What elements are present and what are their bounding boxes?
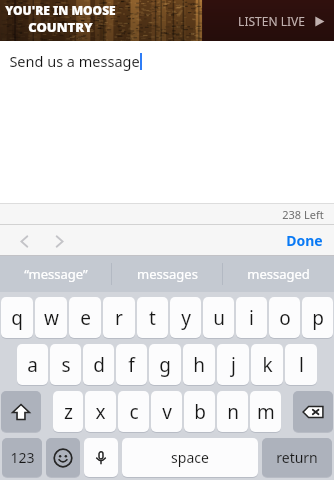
button[interactable]: “message”: [0, 256, 112, 292]
button[interactable]: Shift: [1, 391, 41, 432]
button[interactable]: u: [203, 297, 234, 338]
button[interactable]: j: [217, 344, 249, 385]
staticText: Done: [286, 231, 323, 250]
staticText: YOU'RE IN MOOSE: [5, 2, 116, 18]
staticText: f: [128, 352, 135, 378]
button[interactable]: b: [184, 391, 215, 432]
staticText: Send us a message: [9, 51, 140, 71]
button[interactable]: 123: [2, 438, 42, 477]
staticText: messaged: [247, 265, 310, 283]
button[interactable]: c: [118, 391, 149, 432]
button[interactable]: Next field: [46, 228, 72, 254]
staticText: LISTEN LIVE: [238, 13, 305, 29]
button[interactable]: o: [269, 297, 300, 338]
staticText: z: [64, 399, 73, 425]
button[interactable]: Dictation: [84, 438, 118, 477]
button[interactable]: Done: [286, 231, 323, 250]
staticText: j: [231, 352, 236, 378]
button[interactable]: g: [149, 344, 181, 385]
button[interactable]: Send us a message: [0, 41, 334, 203]
staticText: u: [213, 305, 225, 331]
button[interactable]: e: [69, 297, 101, 338]
staticText: v: [162, 399, 172, 425]
button[interactable]: n: [217, 391, 248, 432]
staticText: return: [276, 448, 318, 467]
button[interactable]: YOU'RE IN MOOSE: [5, 2, 116, 36]
staticText: “message”: [24, 265, 88, 283]
staticText: w: [44, 305, 59, 331]
button[interactable]: Emoji: [46, 438, 80, 477]
button[interactable]: i: [236, 297, 267, 338]
button[interactable]: messages: [112, 256, 223, 292]
button[interactable]: s: [50, 344, 81, 385]
button[interactable]: v: [151, 391, 182, 432]
staticText: e: [80, 305, 91, 331]
button[interactable]: Previous field: [11, 228, 37, 254]
staticText: n: [227, 399, 239, 425]
button[interactable]: m: [250, 391, 281, 432]
staticText: i: [249, 305, 254, 331]
button[interactable]: h: [183, 344, 215, 385]
button[interactable]: space: [122, 438, 258, 477]
staticText: l: [299, 352, 304, 378]
staticText: x: [95, 399, 106, 425]
staticText: k: [262, 352, 273, 378]
staticText: COUNTRY: [28, 18, 93, 36]
staticText: b: [194, 399, 206, 425]
button[interactable]: a: [17, 344, 48, 385]
staticText: m: [257, 399, 275, 425]
button[interactable]: w: [35, 297, 67, 338]
staticText: q: [11, 305, 23, 331]
button[interactable]: return: [262, 438, 332, 477]
button[interactable]: f: [116, 344, 147, 385]
button[interactable]: messaged: [223, 256, 334, 292]
button[interactable]: k: [251, 344, 283, 385]
staticText: h: [193, 352, 205, 378]
button[interactable]: Backspace: [293, 391, 333, 432]
staticText: p: [312, 305, 324, 331]
button[interactable]: q: [1, 297, 33, 338]
staticText: 123: [10, 448, 35, 467]
button[interactable]: p: [302, 297, 333, 338]
staticText: a: [27, 352, 38, 378]
button[interactable]: z: [53, 391, 83, 432]
staticText: g: [159, 352, 171, 378]
staticText: messages: [137, 265, 198, 283]
button[interactable]: x: [85, 391, 116, 432]
button[interactable]: r: [103, 297, 135, 338]
staticText: o: [279, 305, 291, 331]
staticText: r: [115, 305, 123, 331]
staticText: s: [61, 352, 71, 378]
button[interactable]: y: [170, 297, 201, 338]
staticText: space: [171, 448, 209, 467]
button[interactable]: LISTEN LIVE: [238, 13, 325, 29]
staticText: d: [93, 352, 105, 378]
staticText: y: [181, 305, 191, 331]
staticText: c: [129, 399, 139, 425]
button[interactable]: t: [137, 297, 168, 338]
button[interactable]: l: [285, 344, 317, 385]
staticText: 238 Left: [282, 207, 324, 222]
staticText: t: [149, 305, 156, 331]
button[interactable]: d: [83, 344, 114, 385]
